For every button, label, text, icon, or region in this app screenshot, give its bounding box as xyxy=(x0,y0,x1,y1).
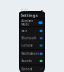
button[interactable]: General xyxy=(20,66,44,72)
staticText: Notifications xyxy=(21,52,38,55)
staticText: Wi-Fi xyxy=(21,29,27,33)
staticText: Sounds xyxy=(21,59,31,63)
staticText: Settings xyxy=(21,13,38,18)
button[interactable]: Notifications xyxy=(20,50,44,57)
button[interactable]: Airplane Mode xyxy=(20,19,44,26)
button[interactable]: Cellular xyxy=(20,42,44,49)
button[interactable]: Bluetooth xyxy=(20,35,44,42)
button[interactable]: Sounds xyxy=(20,57,44,64)
staticText: > xyxy=(41,67,43,71)
staticText: 9:41 xyxy=(21,9,28,12)
button[interactable]: Wi-Fi xyxy=(20,27,44,34)
staticText: Cellular xyxy=(21,44,32,47)
staticText: General xyxy=(21,67,32,71)
staticText: Airplane Mode xyxy=(21,19,33,26)
staticText: Bluetooth xyxy=(21,36,36,40)
